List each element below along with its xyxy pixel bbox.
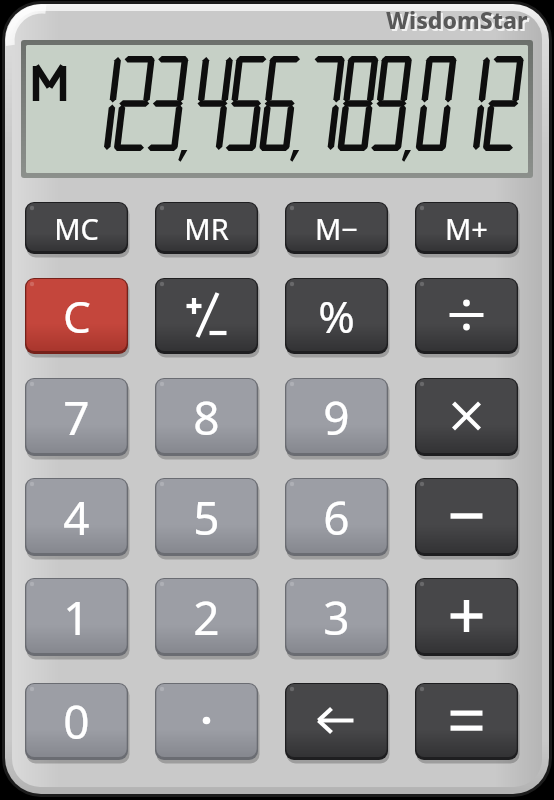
button[interactable]: 2 xyxy=(155,578,258,656)
staticText: 7 xyxy=(63,386,90,449)
staticText: M+ xyxy=(445,209,488,248)
button[interactable]: 3 xyxy=(285,578,388,656)
button[interactable]: 7 xyxy=(25,378,128,456)
button[interactable]: C xyxy=(25,278,128,354)
button[interactable]: 9 xyxy=(285,378,388,456)
staticText: 2 xyxy=(193,586,220,649)
button[interactable]: Multiply xyxy=(415,378,518,456)
staticText: M− xyxy=(315,209,358,248)
staticText: 3 xyxy=(323,586,350,649)
button[interactable]: M+ xyxy=(415,202,518,254)
button[interactable]: 1 xyxy=(25,578,128,656)
staticText: 8 xyxy=(193,386,220,449)
staticText: MC xyxy=(54,209,99,248)
button[interactable]: 8 xyxy=(155,378,258,456)
button[interactable]: Equals xyxy=(415,683,518,760)
button[interactable]: Plus minus xyxy=(155,278,258,354)
staticText: 0 xyxy=(63,690,90,753)
button[interactable]: M− xyxy=(285,202,388,254)
button[interactable]: Subtract xyxy=(415,478,518,556)
button[interactable]: MR xyxy=(155,202,258,254)
staticText: 9 xyxy=(323,386,350,449)
button[interactable]: 5 xyxy=(155,478,258,556)
button[interactable]: Divide xyxy=(415,278,518,354)
staticText: WisdomStar xyxy=(386,4,528,34)
staticText: % xyxy=(318,286,355,346)
button[interactable]: % xyxy=(285,278,388,354)
button[interactable]: 4 xyxy=(25,478,128,556)
staticText: 5 xyxy=(193,486,220,549)
button[interactable]: Decimal point xyxy=(155,683,258,760)
staticText: MR xyxy=(184,209,229,248)
button[interactable]: Backspace xyxy=(285,683,388,760)
button[interactable]: 0 xyxy=(25,683,128,760)
staticText: 4 xyxy=(63,486,90,549)
button[interactable]: MC xyxy=(25,202,128,254)
button[interactable]: 6 xyxy=(285,478,388,556)
staticText: WisdomStar xyxy=(388,6,530,36)
staticText: C xyxy=(63,286,91,346)
staticText: 1 xyxy=(63,586,90,649)
staticText: 6 xyxy=(323,486,350,549)
button[interactable]: Add xyxy=(415,578,518,656)
